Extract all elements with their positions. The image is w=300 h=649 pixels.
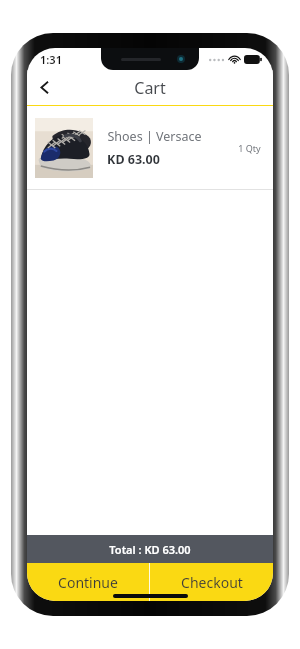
- button[interactable]: Continue: [27, 563, 149, 601]
- button[interactable]: Back: [27, 70, 61, 105]
- staticText: Continue: [58, 573, 118, 592]
- staticText: KD 63.00: [107, 151, 160, 168]
- staticText: Total : KD 63.00: [109, 542, 191, 557]
- button[interactable]: Checkout: [150, 563, 273, 601]
- staticText: Cart: [134, 77, 166, 99]
- button[interactable]: Shoes | Versace: [27, 106, 273, 189]
- staticText: 1 Qty: [238, 142, 261, 154]
- staticText: Checkout: [181, 573, 243, 592]
- staticText: Shoes | Versace: [107, 128, 202, 145]
- staticText: 1:31: [40, 52, 62, 67]
